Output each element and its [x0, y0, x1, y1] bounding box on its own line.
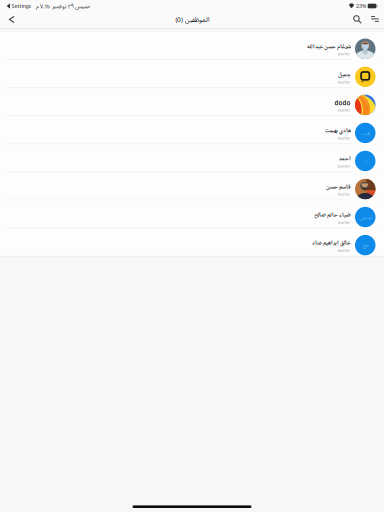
button[interactable]: Search — [349, 12, 366, 27]
staticText: 23% — [356, 2, 366, 10]
staticText: ضياء حاتم صالح — [313, 211, 350, 219]
button[interactable]: جميل — [0, 60, 384, 88]
button[interactable]: Filter — [366, 12, 384, 27]
staticText: teacher — [337, 247, 350, 253]
button[interactable]: قاسم حسن — [0, 172, 384, 200]
staticText: teacher — [337, 107, 350, 112]
button[interactable]: Back — [1, 12, 23, 27]
button[interactable]: dodo — [0, 88, 384, 116]
staticText: ا — [365, 157, 366, 165]
staticText: خميس ٢٩ نوفمبر ٧.٢٥ م — [35, 2, 89, 10]
staticText: شرغام حسن عبدالله — [306, 43, 350, 51]
button[interactable]: هادي بهجت — [0, 116, 384, 144]
staticText: teacher — [337, 51, 350, 56]
staticText: dodo — [334, 99, 350, 107]
button[interactable]: احمد — [0, 144, 384, 172]
staticText: الموظفين (0) — [174, 15, 209, 24]
staticText: teacher — [337, 79, 350, 84]
button[interactable]: شرغام حسن عبدالله — [0, 32, 384, 60]
button[interactable]: خالق ابراهيم عناد — [0, 228, 384, 256]
staticText: هب — [361, 129, 370, 137]
staticText: قاسم حسن — [325, 183, 350, 191]
staticText: احمد — [338, 155, 350, 163]
staticText: teacher — [337, 135, 350, 141]
staticText: خع — [362, 241, 368, 249]
staticText: Settings — [11, 2, 31, 10]
staticText: خالق ابراهيم عناد — [311, 239, 350, 247]
button[interactable]: ضياء حاتم صالح — [0, 200, 384, 228]
staticText: ضص — [359, 213, 372, 221]
staticText: teacher — [337, 191, 350, 197]
staticText: teacher — [337, 219, 350, 225]
staticText: هادي بهجت — [324, 127, 350, 135]
button[interactable]: Settings — [0, 2, 31, 10]
staticText: جميل — [337, 71, 350, 79]
staticText: teacher — [337, 163, 350, 169]
